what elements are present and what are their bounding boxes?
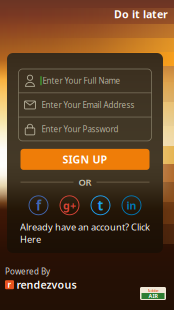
staticText: Powered By [5, 266, 50, 277]
staticText: SIGN UP [62, 152, 107, 166]
button[interactable]: Sign up with Google Plus [58, 194, 80, 216]
staticText: r [7, 279, 11, 290]
staticText: AIR [148, 292, 157, 300]
staticText: Already have an account? Click Here [20, 221, 150, 245]
staticText: f [36, 196, 41, 214]
staticText: Enter Your Password [41, 124, 118, 134]
button[interactable]: Already have an account? Click Here [12, 225, 157, 241]
staticText: Enter Your Full Name [42, 75, 120, 86]
staticText: g+ [63, 198, 76, 212]
button[interactable]: SIGN UP [20, 149, 149, 170]
staticText: t [97, 196, 103, 214]
staticText: OR [78, 176, 91, 188]
button[interactable]: Sign up with LinkedIn [120, 194, 142, 216]
staticText: rendezvous [16, 278, 76, 292]
button[interactable]: Sign up with Facebook [27, 194, 49, 216]
button[interactable]: Do it later [108, 3, 174, 25]
staticText: Adobe [147, 288, 158, 293]
staticText: in [126, 198, 136, 212]
staticText: Do it later [114, 7, 168, 21]
staticText: Enter Your Email Address [41, 100, 134, 110]
button[interactable]: Sign up with Twitter [89, 194, 111, 216]
